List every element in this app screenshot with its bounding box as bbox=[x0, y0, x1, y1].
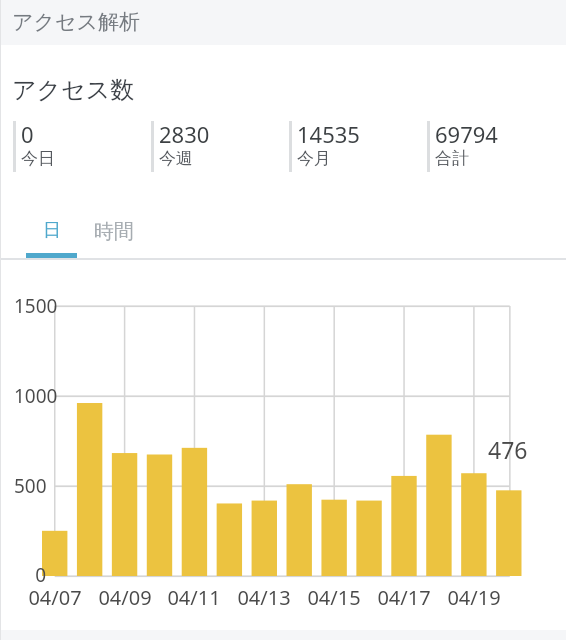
staticText: 今日 bbox=[21, 148, 55, 169]
staticText: 476 bbox=[488, 434, 528, 465]
staticText: 04/09 bbox=[85, 584, 165, 611]
staticText: 合計 bbox=[435, 148, 469, 169]
button[interactable]: 日 bbox=[26, 210, 78, 258]
button[interactable]: 14535 bbox=[289, 121, 427, 172]
staticText: 04/19 bbox=[434, 584, 514, 611]
staticText: 1500 bbox=[14, 293, 58, 319]
button[interactable]: 69794 bbox=[427, 121, 565, 172]
button[interactable]: 0 bbox=[13, 121, 151, 172]
staticText: 0 bbox=[21, 119, 34, 149]
button[interactable]: 2830 bbox=[151, 121, 289, 172]
staticText: 04/13 bbox=[224, 584, 304, 611]
staticText: 今月 bbox=[297, 148, 331, 169]
staticText: 04/11 bbox=[154, 584, 234, 611]
staticText: 04/07 bbox=[15, 584, 95, 611]
staticText: 14535 bbox=[297, 119, 360, 149]
staticText: アクセス解析 bbox=[12, 9, 140, 35]
staticText: 69794 bbox=[435, 119, 498, 149]
staticText: 1000 bbox=[14, 383, 58, 409]
staticText: 500 bbox=[14, 473, 47, 499]
staticText: アクセス数 bbox=[12, 75, 135, 105]
staticText: 04/17 bbox=[364, 584, 444, 611]
staticText: 2830 bbox=[159, 119, 210, 149]
staticText: 04/15 bbox=[294, 584, 374, 611]
button[interactable]: 時間 bbox=[88, 210, 139, 258]
staticText: 日 bbox=[43, 219, 61, 242]
staticText: 0 bbox=[0, 562, 46, 588]
staticText: 時間 bbox=[94, 219, 134, 244]
staticText: 今週 bbox=[159, 148, 193, 169]
